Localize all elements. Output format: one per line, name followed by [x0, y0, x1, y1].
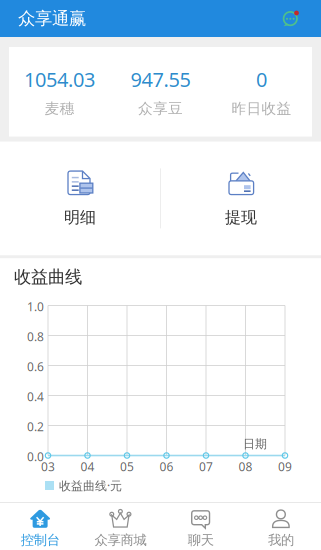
button[interactable]: 聊天: [160, 501, 241, 550]
staticText: 08: [238, 458, 252, 474]
staticText: 0: [256, 66, 267, 93]
staticText: 提现: [225, 208, 257, 227]
staticText: 昨日收益: [231, 100, 291, 118]
staticText: 03: [41, 458, 55, 474]
staticText: 麦穗: [44, 100, 74, 118]
staticText: 收益曲线·元: [59, 477, 122, 493]
staticText: 0.8: [27, 328, 44, 344]
button[interactable]: 我的: [241, 501, 321, 550]
staticText: 05: [120, 458, 134, 474]
staticText: 日期: [243, 436, 267, 451]
staticText: 众享豆: [138, 100, 183, 118]
staticText: 0.6: [27, 358, 44, 374]
staticText: 收益曲线: [14, 266, 82, 287]
staticText: 聊天: [188, 532, 214, 548]
staticText: 0.4: [27, 388, 44, 404]
button[interactable]: 控制台: [0, 501, 80, 550]
staticText: 控制台: [21, 532, 60, 548]
button[interactable]: 消息: [282, 10, 299, 27]
staticText: 1054.03: [24, 66, 95, 93]
staticText: 我的: [268, 532, 294, 548]
staticText: 1.0: [27, 298, 44, 314]
staticText: 04: [80, 458, 94, 474]
staticText: 明细: [64, 208, 96, 227]
button[interactable]: 明细: [0, 142, 160, 255]
staticText: 0.2: [27, 418, 44, 434]
staticText: 0.0: [27, 448, 44, 464]
button[interactable]: 众享商城: [80, 501, 160, 550]
staticText: 众享通赢: [18, 8, 86, 29]
staticText: 07: [199, 458, 213, 474]
staticText: 众享商城: [94, 532, 146, 548]
staticText: 09: [278, 458, 292, 474]
staticText: 06: [159, 458, 173, 474]
button[interactable]: 提现: [161, 142, 321, 255]
staticText: 947.55: [130, 66, 190, 93]
